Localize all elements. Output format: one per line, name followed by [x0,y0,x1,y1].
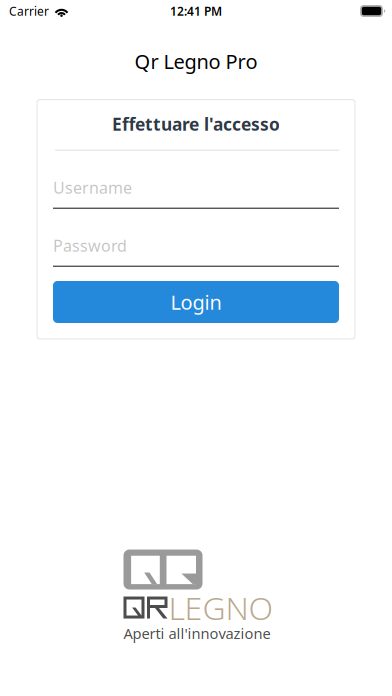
staticText: Qr Legno Pro [134,48,257,75]
staticText: Carrier [9,3,49,19]
staticText: Password [53,235,127,256]
staticText: Aperti all'innovazione [123,623,270,643]
staticText: Username [53,177,132,198]
staticText: 12:41 PM [170,3,222,19]
staticText: LEGNO [168,586,273,629]
staticText: Login [170,289,221,315]
button[interactable]: Login [53,281,339,323]
staticText: Effettuare l'accesso [112,113,280,136]
